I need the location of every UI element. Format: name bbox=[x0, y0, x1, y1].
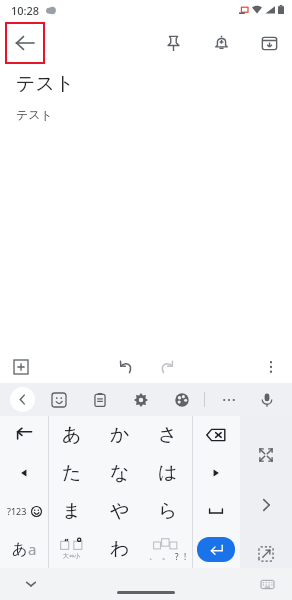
button[interactable]: Key bbox=[0, 454, 48, 492]
button[interactable]: More options bbox=[258, 354, 284, 380]
staticText: さ bbox=[158, 423, 178, 447]
button[interactable]: Key bbox=[192, 416, 240, 454]
button[interactable]: Floating keyboard bbox=[251, 540, 281, 568]
staticText: た bbox=[62, 461, 82, 485]
staticText: あ bbox=[12, 540, 28, 559]
staticText: テスト bbox=[16, 72, 75, 96]
button[interactable]: ま bbox=[48, 492, 96, 530]
button[interactable]: か bbox=[96, 416, 144, 454]
button[interactable]: Previous bbox=[10, 387, 35, 412]
button[interactable]: Change keyboard bbox=[254, 571, 280, 597]
button[interactable]: あ bbox=[0, 530, 48, 568]
staticText: 。 bbox=[162, 551, 170, 561]
button[interactable]: Resize keyboard bbox=[251, 440, 281, 470]
other: Key bbox=[206, 425, 226, 445]
button[interactable]: Themes bbox=[170, 388, 194, 412]
staticText: あ bbox=[62, 423, 82, 447]
button[interactable]: ら bbox=[144, 492, 192, 530]
other: Key bbox=[206, 463, 226, 483]
button[interactable]: ?123 bbox=[0, 492, 48, 530]
staticText: ら bbox=[158, 499, 178, 523]
button[interactable]: な bbox=[96, 454, 144, 492]
button[interactable]: Undo bbox=[113, 354, 139, 380]
button[interactable]: わ bbox=[96, 530, 144, 568]
button[interactable]: Back bbox=[7, 24, 43, 62]
staticText: 10:28 bbox=[11, 3, 40, 18]
button[interactable]: た bbox=[48, 454, 96, 492]
staticText: ! bbox=[184, 551, 187, 562]
button[interactable]: や bbox=[96, 492, 144, 530]
staticText: ?123 bbox=[7, 505, 27, 517]
button[interactable]: Stickers bbox=[47, 388, 71, 412]
other: Key bbox=[206, 501, 226, 521]
button[interactable]: Key bbox=[0, 416, 48, 454]
button[interactable]: More bbox=[217, 388, 241, 412]
button[interactable]: Add reminder bbox=[206, 28, 236, 58]
button[interactable]: Next bbox=[251, 490, 281, 520]
staticText: か bbox=[110, 423, 130, 447]
button[interactable]: Redo bbox=[153, 354, 179, 380]
button[interactable]: Settings bbox=[129, 388, 153, 412]
button[interactable]: 、 bbox=[144, 530, 192, 568]
button[interactable]: は bbox=[144, 454, 192, 492]
button[interactable]: Add bbox=[8, 354, 34, 380]
staticText: ? bbox=[175, 551, 179, 562]
staticText: わ bbox=[110, 537, 130, 561]
button[interactable]: Voice input bbox=[255, 388, 279, 412]
staticText: 、 bbox=[149, 551, 157, 561]
other: Key bbox=[14, 463, 34, 483]
button[interactable]: あ bbox=[48, 416, 96, 454]
staticText: テスト bbox=[16, 107, 53, 122]
button[interactable]: Enter bbox=[197, 537, 235, 562]
staticText: は bbox=[158, 461, 178, 485]
staticText: a bbox=[28, 539, 37, 559]
button[interactable]: Enter bbox=[192, 530, 240, 568]
staticText: な bbox=[110, 461, 130, 485]
button[interactable]: Archive bbox=[254, 28, 284, 58]
button[interactable]: 大⇔小 bbox=[48, 530, 96, 568]
button[interactable]: Clipboard bbox=[88, 388, 112, 412]
button[interactable]: Key bbox=[192, 492, 240, 530]
other: Key bbox=[14, 425, 34, 445]
button[interactable]: Hide keyboard bbox=[18, 571, 44, 597]
button[interactable]: さ bbox=[144, 416, 192, 454]
button[interactable]: Pin bbox=[158, 28, 188, 58]
staticText: 大⇔小 bbox=[63, 552, 81, 560]
staticText: や bbox=[110, 499, 130, 523]
button[interactable]: Key bbox=[192, 454, 240, 492]
staticText: ま bbox=[62, 499, 82, 523]
